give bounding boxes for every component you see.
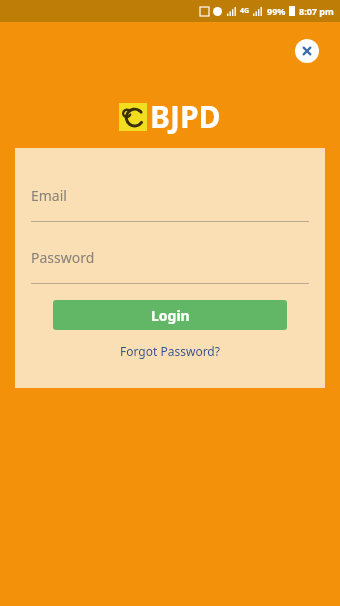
staticText: 99% <box>267 5 286 17</box>
staticText: BJPD <box>150 96 221 137</box>
button[interactable]: Close <box>295 39 319 63</box>
staticText: Forgot Password? <box>120 343 220 359</box>
staticText: 4G <box>240 6 250 16</box>
button[interactable]: Email <box>31 186 309 222</box>
staticText: Email <box>31 186 67 205</box>
staticText: Login <box>151 306 190 325</box>
button[interactable]: Login <box>53 300 287 330</box>
button[interactable]: Forgot Password? <box>112 340 228 362</box>
staticText: 8:07 pm <box>299 5 334 17</box>
staticText: Password <box>31 248 95 267</box>
button[interactable]: Password <box>31 248 309 284</box>
